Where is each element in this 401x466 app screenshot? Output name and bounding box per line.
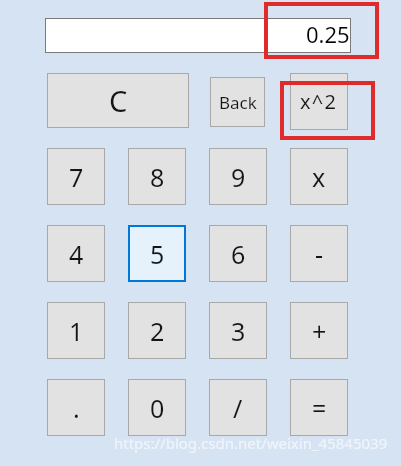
button[interactable]: 8 bbox=[128, 148, 186, 205]
button[interactable]: 1 bbox=[47, 302, 105, 359]
button[interactable]: 6 bbox=[209, 225, 267, 282]
button[interactable]: 5 bbox=[128, 225, 186, 282]
staticText: 2 bbox=[150, 314, 165, 348]
button[interactable]: 7 bbox=[47, 148, 105, 205]
staticText: . bbox=[73, 391, 80, 425]
staticText: = bbox=[312, 391, 327, 425]
button[interactable]: C bbox=[47, 73, 189, 128]
staticText: 1 bbox=[69, 314, 84, 348]
button[interactable]: 9 bbox=[209, 148, 267, 205]
button[interactable]: 0 bbox=[128, 379, 186, 436]
staticText: C bbox=[109, 81, 128, 120]
staticText: 3 bbox=[231, 314, 246, 348]
staticText: 4 bbox=[69, 237, 84, 271]
staticText: 0 bbox=[150, 391, 165, 425]
staticText: 0.25 bbox=[306, 19, 350, 49]
button[interactable]: + bbox=[290, 302, 348, 359]
button[interactable]: = bbox=[290, 379, 348, 436]
staticText: 8 bbox=[150, 160, 165, 194]
button[interactable]: 3 bbox=[209, 302, 267, 359]
button[interactable]: x^2 bbox=[290, 73, 348, 130]
staticText: https://blog.csdn.net/weixin_45845039 bbox=[114, 433, 388, 453]
staticText: x^2 bbox=[300, 88, 338, 115]
staticText: 5 bbox=[150, 237, 165, 271]
staticText: + bbox=[312, 314, 327, 348]
staticText: / bbox=[233, 391, 243, 425]
button[interactable]: 0.25 bbox=[45, 18, 351, 53]
staticText: - bbox=[315, 237, 324, 271]
button[interactable]: 4 bbox=[47, 225, 105, 282]
button[interactable]: / bbox=[209, 379, 267, 436]
button[interactable]: . bbox=[47, 379, 105, 436]
staticText: 7 bbox=[69, 160, 84, 194]
button[interactable]: Back bbox=[210, 77, 265, 127]
button[interactable]: x bbox=[290, 148, 348, 205]
staticText: 9 bbox=[231, 160, 246, 194]
button[interactable]: 2 bbox=[128, 302, 186, 359]
staticText: 6 bbox=[231, 237, 246, 271]
staticText: Back bbox=[219, 91, 257, 114]
staticText: x bbox=[312, 160, 326, 194]
button[interactable]: - bbox=[290, 225, 348, 282]
